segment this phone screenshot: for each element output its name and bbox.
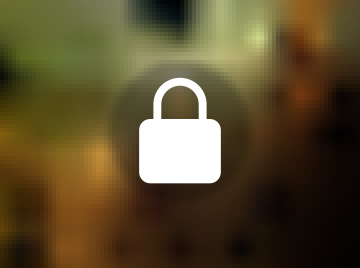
button[interactable]: Unlock bbox=[139, 81, 221, 187]
